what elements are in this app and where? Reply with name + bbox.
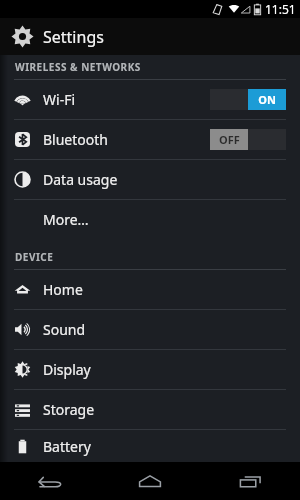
- staticText: Home: [43, 280, 83, 299]
- button[interactable]: Bluetooth: [0, 120, 300, 159]
- button[interactable]: Battery: [0, 430, 300, 462]
- staticText: More…: [43, 210, 89, 229]
- staticText: Data usage: [43, 170, 118, 189]
- other: Storage: [14, 401, 31, 418]
- button[interactable]: Recent apps: [200, 462, 300, 500]
- staticText: Storage: [43, 400, 95, 419]
- staticText: Display: [43, 360, 91, 379]
- button[interactable]: Back: [0, 462, 100, 500]
- button[interactable]: More…: [0, 200, 300, 239]
- button[interactable]: Home: [0, 270, 300, 309]
- button[interactable]: Sound: [0, 310, 300, 349]
- staticText: WIRELESS & NETWORKS: [15, 60, 141, 74]
- button[interactable]: Display: [0, 350, 300, 389]
- button[interactable]: Storage: [0, 390, 300, 429]
- staticText: ON: [258, 92, 276, 107]
- staticText: Wi-Fi: [43, 90, 76, 109]
- button[interactable]: Wi-Fi on: [210, 89, 286, 110]
- other: Wi-Fi: [14, 91, 31, 108]
- staticText: Settings: [43, 26, 104, 48]
- button[interactable]: Home: [100, 462, 200, 500]
- button[interactable]: Bluetooth off: [210, 129, 286, 150]
- other: Home: [14, 281, 31, 298]
- staticText: Battery: [43, 437, 91, 456]
- other: Display: [14, 361, 31, 378]
- button[interactable]: Wi-Fi: [0, 80, 300, 119]
- staticText: Sound: [43, 320, 86, 339]
- staticText: DEVICE: [15, 250, 54, 264]
- other: Sound: [14, 321, 31, 338]
- other: Bluetooth: [14, 131, 31, 148]
- other: Data usage: [14, 171, 31, 188]
- staticText: Bluetooth: [43, 130, 108, 149]
- other: Battery: [14, 438, 31, 455]
- staticText: 11:51: [265, 1, 296, 17]
- staticText: OFF: [219, 132, 240, 147]
- button[interactable]: Data usage: [0, 160, 300, 199]
